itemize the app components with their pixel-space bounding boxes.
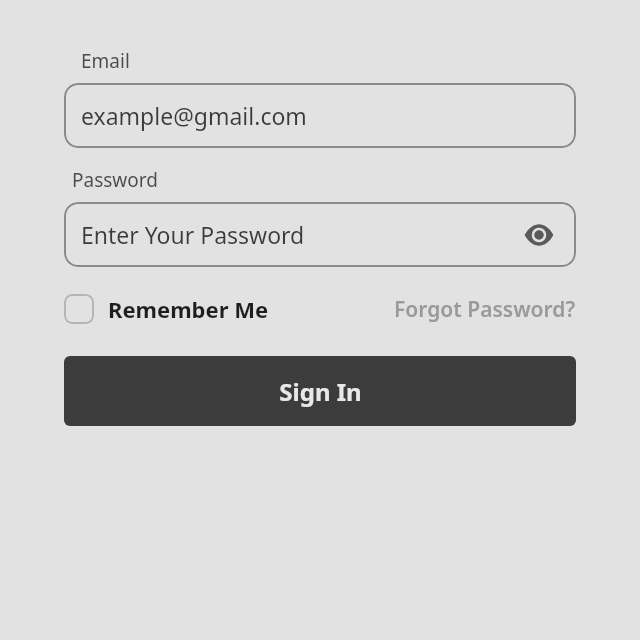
button[interactable]: Sign In [64, 356, 576, 426]
button[interactable]: Remember Me [64, 294, 269, 324]
staticText: Forgot Password? [394, 295, 576, 324]
button[interactable]: Show password [519, 215, 559, 255]
staticText: Email [81, 48, 130, 74]
staticText: Enter Your Password [81, 219, 305, 250]
staticText: Sign In [279, 375, 362, 408]
staticText: example@gmail.com [81, 100, 307, 131]
button[interactable]: example@gmail.com [64, 83, 576, 148]
staticText: Password [72, 167, 158, 193]
button[interactable]: Enter Your Password [64, 202, 576, 267]
staticText: Remember Me [108, 294, 269, 324]
button[interactable]: Forgot Password? [394, 295, 576, 324]
